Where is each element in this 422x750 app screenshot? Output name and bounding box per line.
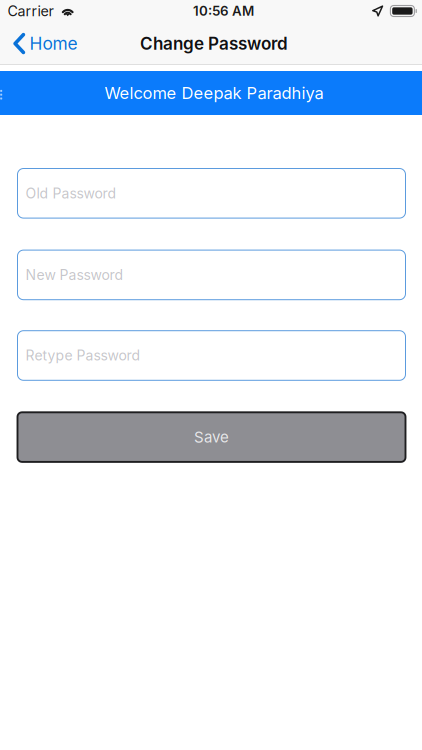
- staticText: Home: [29, 33, 77, 54]
- staticText: Change Password: [140, 33, 288, 54]
- staticText: Carrier: [7, 2, 53, 20]
- staticText: 10:56 AM: [193, 3, 254, 19]
- button[interactable]: New Password: [17, 250, 405, 300]
- staticText: Old Password: [25, 185, 116, 202]
- staticText: Retype Password: [25, 347, 140, 364]
- button[interactable]: Save: [17, 412, 405, 462]
- staticText: Welcome Deepak Paradhiya: [104, 83, 323, 103]
- staticText: Save: [194, 428, 229, 446]
- button[interactable]: Home: [0, 22, 87, 65]
- staticText: New Password: [25, 266, 123, 283]
- button[interactable]: Old Password: [17, 168, 405, 218]
- button[interactable]: Retype Password: [17, 331, 405, 380]
